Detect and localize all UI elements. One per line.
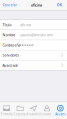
staticText: Carpetas: [14, 112, 27, 116]
button[interactable]: OK: [55, 0, 67, 10]
staticText: Entrada: [1, 112, 13, 116]
staticText: oficina: [20, 22, 31, 27]
staticText: Contraseña: [2, 43, 20, 47]
staticText: Contactos: [40, 112, 54, 116]
staticText: usuario@servidor.com: [20, 33, 53, 37]
button[interactable]: Ajustes: [54, 102, 67, 119]
button[interactable]: Avanzado: [0, 60, 67, 70]
staticText: oficina: [31, 2, 42, 7]
button[interactable]: Carpetas: [13, 102, 27, 119]
staticText: Ajustes: [55, 112, 65, 116]
staticText: Cancelar: [2, 3, 16, 7]
staticText: Servidores: [2, 53, 19, 58]
staticText: OK: [57, 3, 62, 7]
staticText: Título: [2, 22, 11, 27]
staticText: Avanzado: [2, 63, 18, 68]
button[interactable]: Contactos: [40, 102, 54, 119]
staticText: Enviados: [27, 112, 40, 116]
button[interactable]: Cancelar: [0, 0, 18, 10]
staticText: Nombre: [2, 33, 15, 37]
button[interactable]: Enviados: [27, 102, 40, 119]
button[interactable]: Servidores: [0, 50, 67, 60]
button[interactable]: Entrada: [0, 102, 13, 119]
